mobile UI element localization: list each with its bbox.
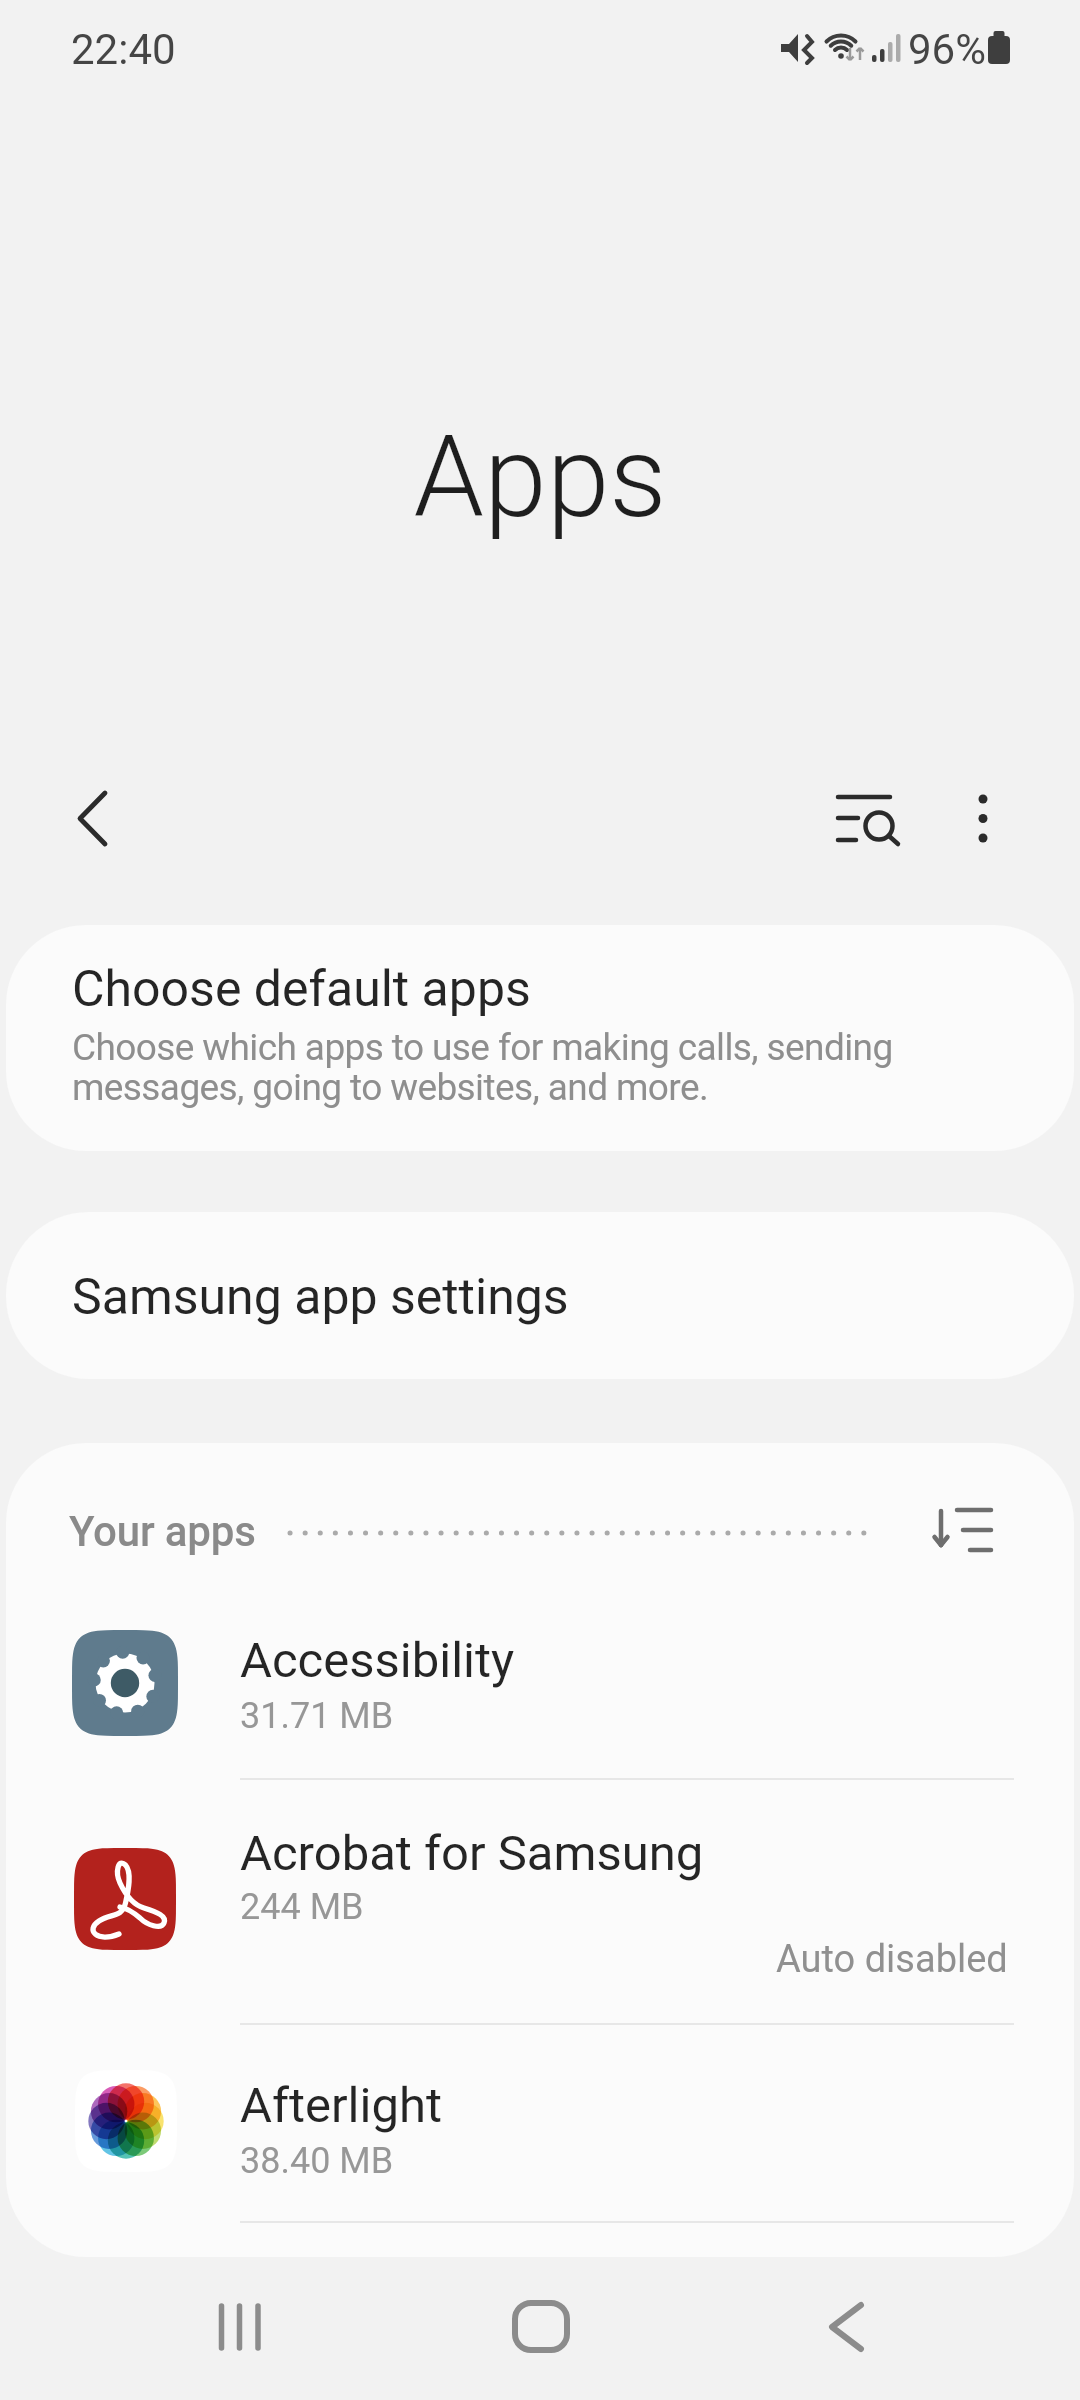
button[interactable]: Samsung app settings <box>6 1212 1074 1379</box>
button[interactable] <box>40 778 150 862</box>
staticText: Samsung app settings <box>72 1268 569 1327</box>
staticText: Afterlight <box>240 2077 442 2134</box>
staticText: Your apps <box>69 1507 256 1556</box>
staticText: Choose default apps <box>72 960 531 1019</box>
staticText: 22:40 <box>71 25 176 74</box>
button[interactable] <box>460 2280 620 2390</box>
button[interactable]: Choose default apps <box>6 925 1074 1151</box>
button[interactable] <box>906 1483 1026 1583</box>
staticText: Acrobat for Samsung <box>240 1825 704 1882</box>
staticText: Apps <box>0 411 1080 543</box>
button[interactable]: Afterlight <box>6 2025 1074 2222</box>
staticText: Choose which apps to use for making call… <box>72 1026 893 1069</box>
staticText: Auto disabled <box>776 1937 1008 1982</box>
staticText: 31.71 MB <box>240 1695 394 1737</box>
staticText: Accessibility <box>240 1632 515 1689</box>
button[interactable] <box>820 778 920 862</box>
staticText: messages, going to websites, and more. <box>72 1066 709 1109</box>
staticText: 38.40 MB <box>240 2140 394 2182</box>
button[interactable] <box>943 778 1023 862</box>
button[interactable] <box>760 2280 920 2390</box>
button[interactable]: Acrobat for Samsung <box>6 1780 1074 2024</box>
button[interactable] <box>160 2280 320 2390</box>
staticText: 96% <box>908 25 986 74</box>
staticText: 244 MB <box>240 1886 364 1928</box>
button[interactable]: Accessibility <box>6 1580 1074 1779</box>
